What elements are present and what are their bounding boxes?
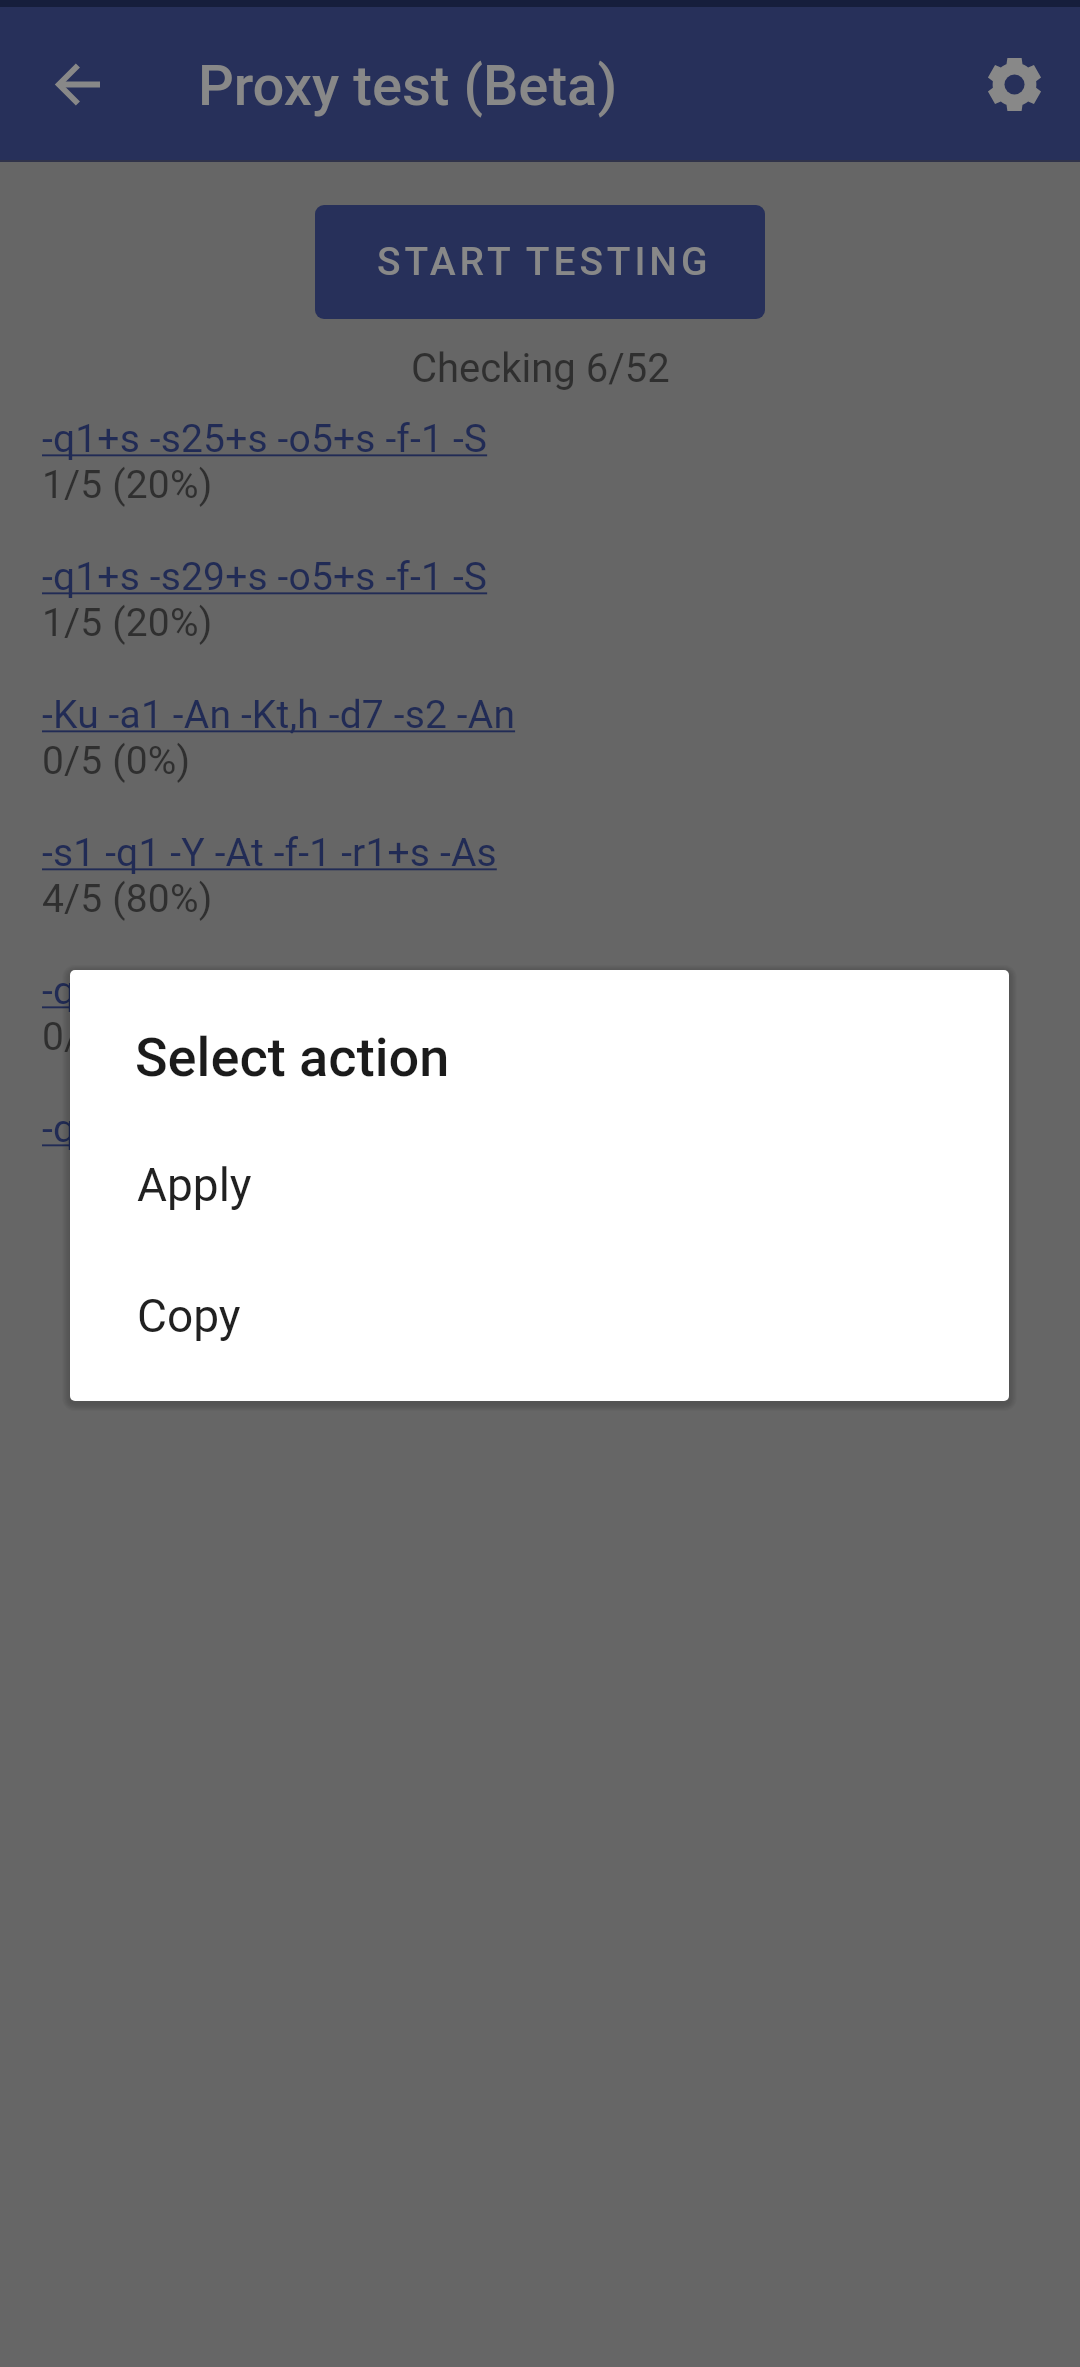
button[interactable]: Apply	[70, 1120, 1009, 1250]
staticText: Copy	[137, 1289, 241, 1343]
button[interactable]: START TESTING	[315, 205, 765, 319]
staticText: 0/5 (0%)	[42, 1014, 191, 1060]
button[interactable]: -q1+s -s29+s -o5+s -f-1 -S	[0, 554, 1080, 646]
button[interactable]: Copy	[70, 1251, 1009, 1381]
staticText: 1/5 (20%)	[42, 600, 213, 646]
staticText: Proxy test (Beta)	[198, 53, 618, 119]
staticText: -Ku -a1 -An -Kt,h -d7 -s2 -An	[42, 692, 516, 738]
staticText: -s1 -q1 -Y -At -f-1 -r1+s -As	[42, 830, 497, 876]
button[interactable]: -q1+s -s17+s -o5+s -f-1 -S	[0, 968, 1080, 1060]
staticText: -q1+s -s12+s -o5+s -f-1 -S	[42, 1106, 488, 1152]
staticText: START TESTING	[377, 239, 712, 285]
button[interactable]: Navigate up	[33, 39, 123, 129]
staticText: -q1+s -s17+s -o5+s -f-1 -S	[42, 968, 488, 1014]
staticText: 4/5 (80%)	[42, 876, 213, 922]
button[interactable]: -s1 -q1 -Y -At -f-1 -r1+s -As	[0, 830, 1080, 922]
button[interactable]: -q1+s -s25+s -o5+s -f-1 -S	[0, 416, 1080, 508]
staticText: 1/5 (20%)	[42, 462, 213, 508]
staticText: Checking 6/52	[411, 345, 670, 392]
button[interactable]: -Ku -a1 -An -Kt,h -d7 -s2 -An	[0, 692, 1080, 784]
staticText: -q1+s -s25+s -o5+s -f-1 -S	[42, 416, 488, 462]
staticText: -q1+s -s29+s -o5+s -f-1 -S	[42, 554, 488, 600]
staticText: Apply	[137, 1158, 252, 1212]
button[interactable]: -q1+s -s12+s -o5+s -f-1 -S	[0, 1106, 1080, 1152]
staticText: Select action	[135, 1026, 450, 1089]
staticText: 0/5 (0%)	[42, 738, 191, 784]
button[interactable]: Settings	[969, 39, 1059, 129]
